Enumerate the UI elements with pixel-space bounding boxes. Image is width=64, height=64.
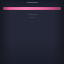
button[interactable]: Title: [4, 2, 60, 3]
button[interactable]: Primary action: [3, 7, 61, 10]
